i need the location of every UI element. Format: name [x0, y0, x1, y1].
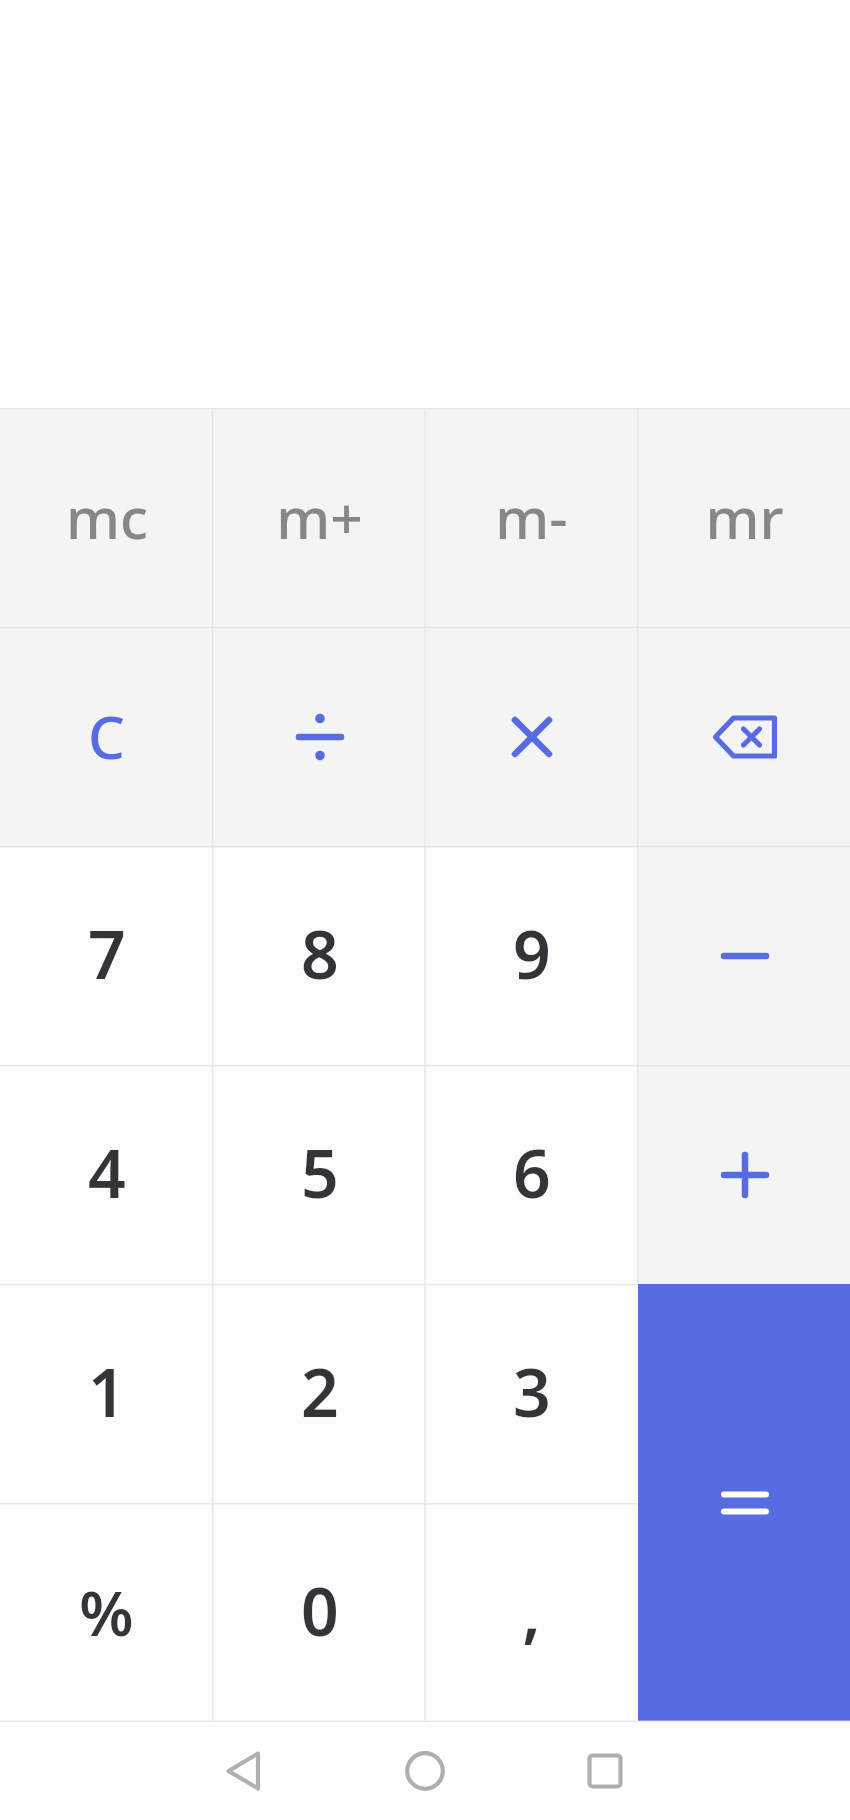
button[interactable]: Minus: [638, 846, 850, 1065]
staticText: 8: [301, 908, 339, 998]
button[interactable]: Equals: [638, 1284, 850, 1722]
staticText: mc: [66, 478, 148, 556]
staticText: 7: [88, 908, 126, 998]
button[interactable]: 9: [425, 846, 638, 1065]
staticText: %: [79, 1570, 134, 1654]
button[interactable]: 2: [213, 1284, 426, 1503]
button[interactable]: 8: [213, 846, 426, 1065]
button[interactable]: Divide: [213, 627, 426, 846]
button[interactable]: 6: [425, 1065, 638, 1284]
staticText: 0: [301, 1565, 339, 1655]
staticText: 5: [301, 1127, 339, 1217]
button[interactable]: 3: [425, 1284, 638, 1503]
button[interactable]: Multiply: [425, 627, 638, 846]
button[interactable]: Recents: [569, 1735, 641, 1807]
staticText: mr: [705, 478, 784, 556]
staticText: m-: [495, 478, 568, 556]
button[interactable]: mr: [638, 408, 850, 627]
button[interactable]: C: [0, 627, 213, 846]
staticText: C: [88, 697, 125, 776]
button[interactable]: mc: [0, 408, 213, 627]
button[interactable]: ,: [425, 1503, 638, 1722]
button[interactable]: 0: [213, 1503, 426, 1722]
button[interactable]: %: [0, 1503, 213, 1722]
button[interactable]: 5: [213, 1065, 426, 1284]
staticText: 6: [513, 1127, 551, 1217]
button[interactable]: Back: [207, 1735, 279, 1807]
staticText: 9: [513, 908, 551, 998]
button[interactable]: 1: [0, 1284, 213, 1503]
staticText: 3: [513, 1346, 551, 1436]
staticText: 1: [88, 1346, 126, 1436]
button[interactable]: 4: [0, 1065, 213, 1284]
button[interactable]: Plus: [638, 1065, 850, 1284]
staticText: 2: [301, 1346, 339, 1436]
staticText: 4: [88, 1127, 126, 1217]
button[interactable]: Home: [389, 1735, 461, 1807]
button[interactable]: m-: [425, 408, 638, 627]
button[interactable]: Backspace: [638, 627, 850, 846]
staticText: m+: [276, 478, 363, 556]
button[interactable]: m+: [213, 408, 426, 627]
button[interactable]: 7: [0, 846, 213, 1065]
staticText: ,: [522, 1565, 541, 1655]
